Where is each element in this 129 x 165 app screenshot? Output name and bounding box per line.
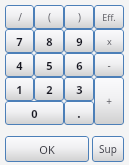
staticText: 3 [76,82,83,97]
staticText: 0 [31,106,38,121]
button[interactable]: Eff. [94,5,124,29]
button[interactable]: 9 [64,29,94,53]
button[interactable]: Sup [92,136,124,162]
button[interactable]: ) [64,5,94,29]
staticText: 4 [16,58,23,73]
button[interactable]: 2 [34,77,64,101]
staticText: ( [48,10,51,24]
button[interactable]: 0 [5,101,64,125]
staticText: ) [78,10,81,24]
staticText: 1 [16,82,23,97]
button[interactable]: OK [5,136,89,162]
button[interactable]: + [94,77,124,125]
button[interactable]: ( [34,5,64,29]
button[interactable]: 3 [64,77,94,101]
staticText: + [106,94,112,108]
staticText: OK [39,142,55,157]
staticText: 8 [46,34,53,49]
button[interactable]: / [5,5,34,29]
button[interactable]: 5 [34,53,64,77]
button[interactable]: 6 [64,53,94,77]
button[interactable]: 4 [5,53,34,77]
staticText: Sup [99,142,117,156]
staticText: 9 [76,34,83,49]
staticText: x [107,35,112,47]
button[interactable]: - [94,53,124,77]
button[interactable]: x [94,29,124,53]
staticText: Eff. [102,11,116,23]
button[interactable]: 8 [34,29,64,53]
staticText: 7 [16,34,23,49]
staticText: / [18,10,22,24]
button[interactable]: . [64,101,94,125]
staticText: - [107,58,111,72]
staticText: 2 [46,82,53,97]
button[interactable]: 1 [5,77,34,101]
staticText: 6 [76,58,83,73]
button[interactable]: 7 [5,29,34,53]
staticText: 5 [46,58,53,73]
staticText: . [77,105,81,121]
